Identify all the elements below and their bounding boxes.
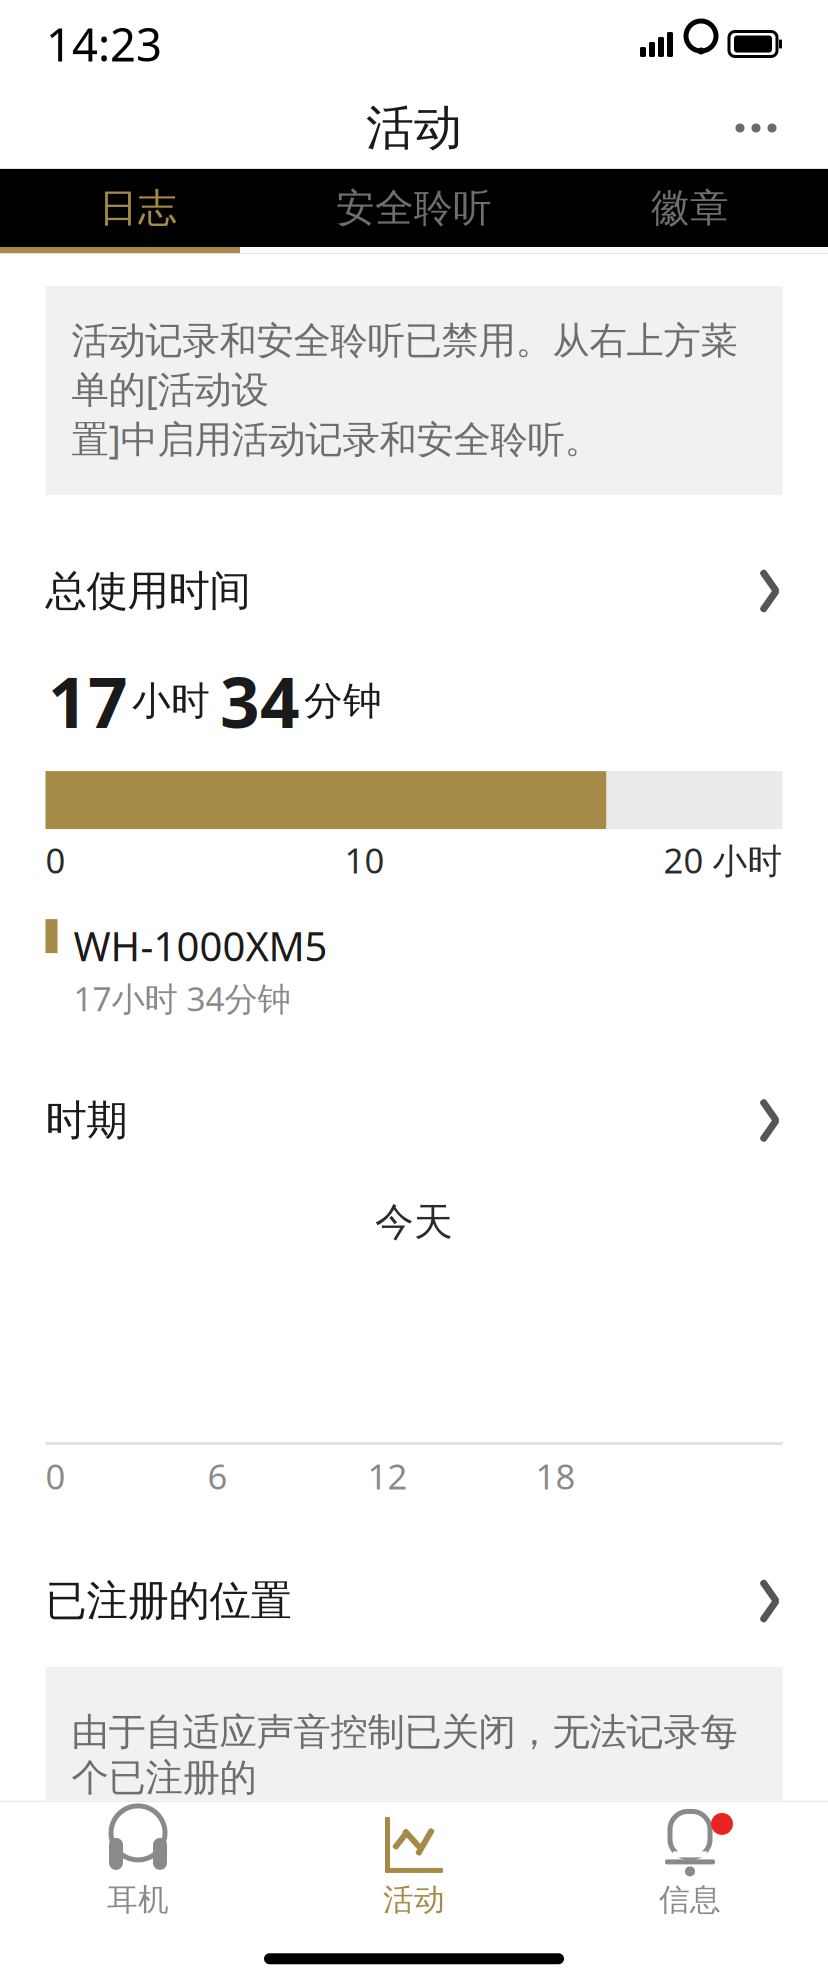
staticText: 由于自适应声音控制已关闭，无法记录每个已注册的	[71, 1709, 737, 1801]
staticText: 已注册的位置	[45, 1576, 291, 1626]
button[interactable]: 时期	[45, 1090, 782, 1150]
staticText: 活动	[383, 1881, 445, 1919]
staticText: 时期	[45, 1095, 127, 1146]
staticText: 0	[45, 837, 65, 883]
staticText: 信息	[659, 1881, 721, 1919]
staticText: 34	[220, 655, 300, 747]
staticText: 今天	[375, 1198, 453, 1246]
staticText: 活动	[366, 98, 462, 157]
staticText: 总使用时间	[45, 566, 250, 616]
staticText: 0	[45, 1453, 65, 1499]
button[interactable]: 活动	[276, 1802, 552, 1930]
staticText: 活动记录和安全聆听已禁用。从右上方菜单的[活动设 置]中启用活动记录和安全聆听。	[71, 318, 737, 463]
button[interactable]: 日志	[0, 169, 276, 247]
button[interactable]: 已注册的位置	[45, 1571, 782, 1631]
staticText: 日志	[99, 184, 177, 232]
button[interactable]: 耳机	[0, 1802, 276, 1930]
staticText: 17	[48, 655, 128, 747]
staticText: 20 小时	[663, 837, 782, 883]
staticText: 17小时 34分钟	[73, 976, 290, 1020]
staticText: 分钟	[304, 677, 382, 725]
staticText: 徽章	[651, 184, 729, 232]
button[interactable]: 总使用时间	[45, 561, 782, 621]
staticText: 小时	[132, 677, 210, 725]
staticText: 12	[367, 1453, 407, 1499]
button[interactable]: More options	[708, 92, 804, 164]
button[interactable]: 安全聆听	[276, 169, 552, 247]
staticText: 18	[535, 1453, 575, 1499]
staticText: WH-1000XM5	[73, 919, 327, 972]
staticText: 安全聆听	[336, 184, 492, 232]
button[interactable]: 徽章	[552, 169, 828, 247]
button[interactable]: 信息	[552, 1802, 828, 1930]
staticText: 10	[344, 837, 384, 883]
staticText: 耳机	[107, 1881, 169, 1919]
staticText: 6	[207, 1453, 227, 1499]
